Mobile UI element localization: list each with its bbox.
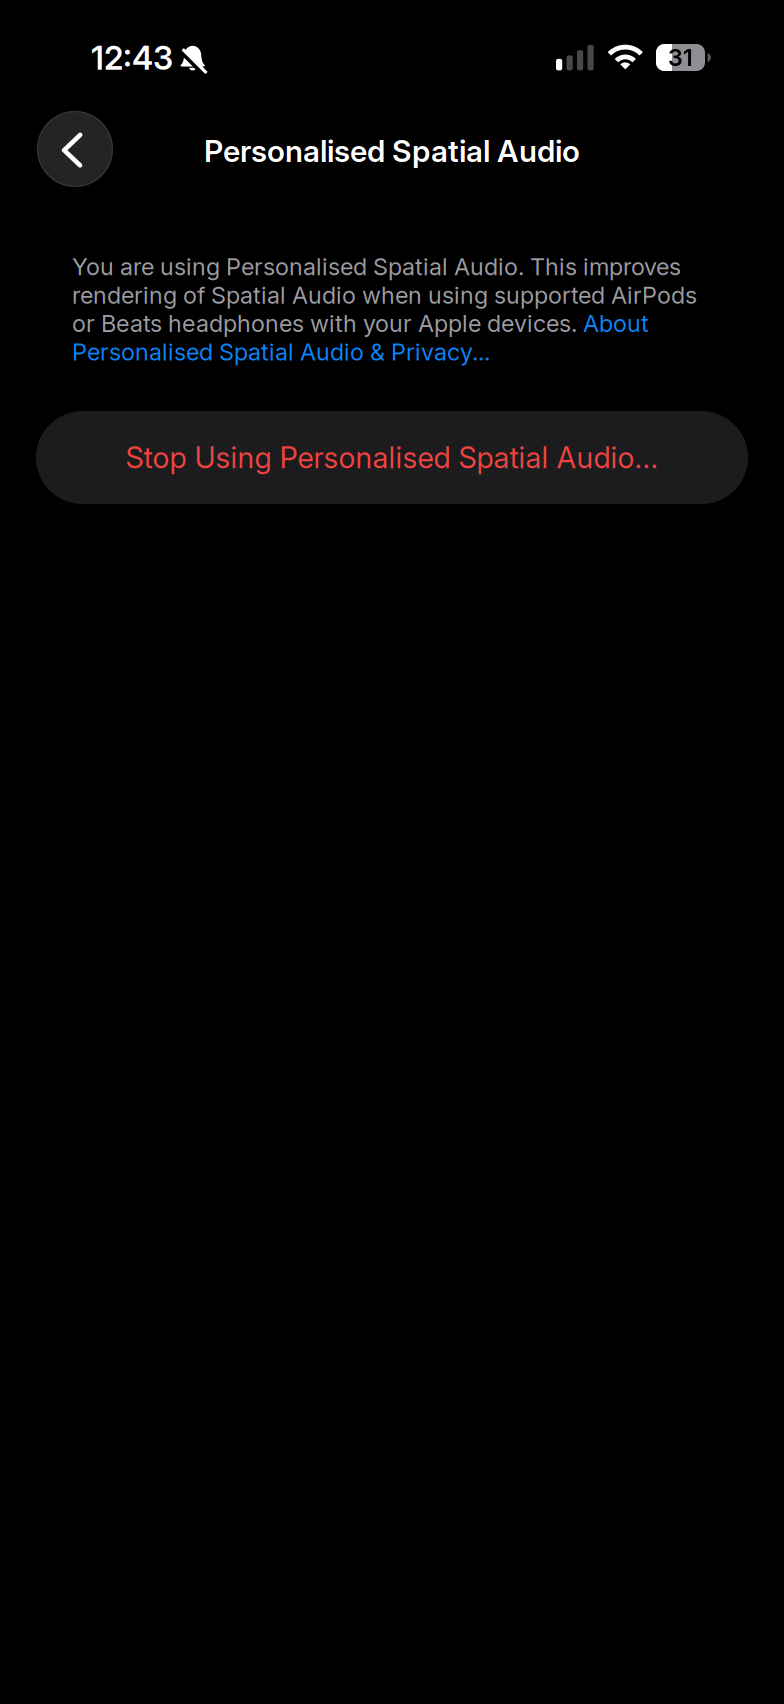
staticText: You are using Personalised Spatial Audio… <box>72 252 697 366</box>
button[interactable]: Back <box>37 111 113 187</box>
staticText: Personalised Spatial Audio <box>204 133 580 169</box>
staticText: 12:43 <box>91 38 173 77</box>
staticText: 31 <box>668 43 693 72</box>
button[interactable]: Stop Using Personalised Spatial Audio... <box>36 411 748 504</box>
staticText: Stop Using Personalised Spatial Audio... <box>125 440 658 475</box>
